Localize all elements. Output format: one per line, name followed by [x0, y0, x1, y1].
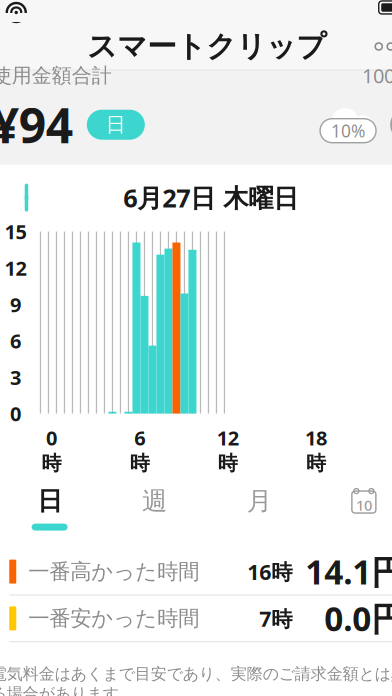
button[interactable]: 前の日 [4, 179, 42, 217]
staticText: 16時 [247, 557, 292, 586]
staticText: 0.0円 [324, 596, 392, 641]
staticText: 6月27日 木曜日 [123, 181, 298, 214]
staticText: 使用金額合計 [0, 63, 112, 88]
button[interactable]: カレンダー [311, 478, 392, 538]
staticText: 6 [10, 327, 21, 354]
staticText: 15 [4, 218, 26, 245]
staticText: 14.1円 [305, 549, 392, 594]
staticText: 18 [305, 425, 327, 451]
staticText: 日 [37, 485, 62, 517]
button[interactable]: 月 [207, 475, 312, 541]
staticText: 10% [331, 119, 365, 142]
staticText: 10 [356, 495, 372, 515]
button[interactable]: 日 [87, 110, 145, 140]
staticText: 100% [362, 62, 392, 89]
staticText: 7時 [259, 604, 292, 632]
staticText: 週 [142, 485, 167, 517]
button[interactable]: 週 [102, 475, 207, 541]
staticText: 9 [10, 291, 21, 318]
staticText: 6 [134, 425, 145, 451]
staticText: 電気料金はあくまで目安であり、実際のご請求金額とは異なる場合があります。 [0, 664, 392, 696]
button[interactable]: その他 [361, 29, 392, 64]
staticText: 0 [10, 400, 21, 427]
staticText: スマートクリップ [87, 28, 326, 64]
staticText: 12 [4, 255, 26, 281]
staticText: 時 [306, 451, 326, 476]
staticText: 12 [217, 425, 239, 451]
button[interactable]: 更新 [377, 105, 392, 145]
staticText: 一番安かった時間 [28, 605, 199, 631]
button[interactable]: 日 [0, 475, 102, 541]
staticText: 一番高かった時間 [28, 558, 199, 585]
staticText: 日 [106, 112, 126, 137]
staticText: 時 [218, 451, 238, 476]
button[interactable]: クラウド 10% [319, 105, 377, 145]
staticText: 月 [247, 485, 272, 517]
staticText: 時 [41, 451, 61, 476]
staticText: ¥94 [0, 93, 73, 156]
staticText: 0 [46, 425, 57, 451]
staticText: 時 [130, 451, 150, 476]
staticText: 3 [10, 364, 21, 390]
